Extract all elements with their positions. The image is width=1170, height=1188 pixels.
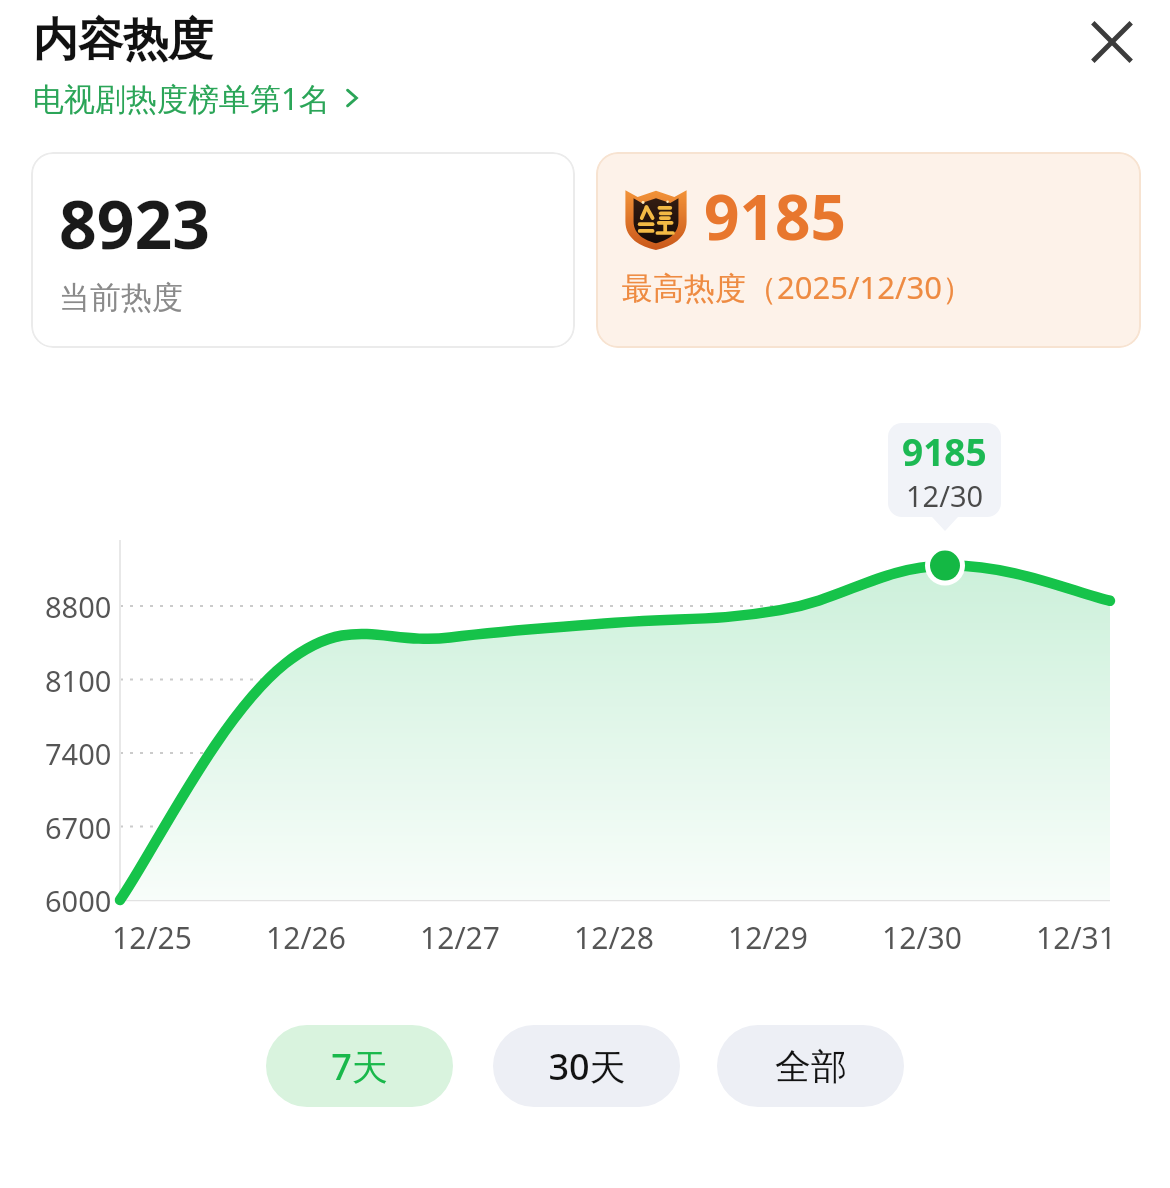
staticText: 12/30	[906, 476, 984, 515]
staticText: 6000	[45, 881, 112, 920]
button[interactable]: 30天	[493, 1025, 680, 1107]
staticText: 全部	[775, 1044, 847, 1089]
staticText: 12/28	[574, 917, 654, 958]
staticText: 7天	[331, 1042, 388, 1091]
staticText: 7400	[45, 734, 112, 773]
button[interactable]: 电视剧热度榜单第1名	[33, 77, 366, 119]
button[interactable]: Close	[1078, 8, 1146, 76]
staticText: 12/31	[1036, 917, 1116, 958]
staticText: 当前热度	[59, 278, 183, 317]
staticText: 电视剧热度榜单第1名	[33, 77, 330, 119]
staticText: 12/27	[420, 917, 500, 958]
staticText: 8800	[45, 587, 112, 626]
button[interactable]: 9185	[596, 152, 1141, 348]
staticText: 12/26	[266, 917, 346, 958]
staticText: 8923	[59, 178, 211, 268]
staticText: 12/25	[112, 917, 192, 958]
staticText: 9185	[704, 174, 846, 258]
button[interactable]: 7天	[266, 1025, 453, 1107]
staticText: 8100	[45, 661, 112, 700]
staticText: 最高热度（2025/12/30）	[622, 266, 973, 308]
staticText: 30天	[548, 1042, 626, 1091]
staticText: 12/29	[728, 917, 808, 958]
staticText: 9185	[902, 426, 987, 476]
staticText: 12/30	[882, 917, 962, 958]
button[interactable]: 全部	[717, 1025, 904, 1107]
staticText: 内容热度	[33, 12, 213, 69]
button[interactable]: 8923	[31, 152, 575, 348]
staticText: 6700	[45, 808, 112, 847]
